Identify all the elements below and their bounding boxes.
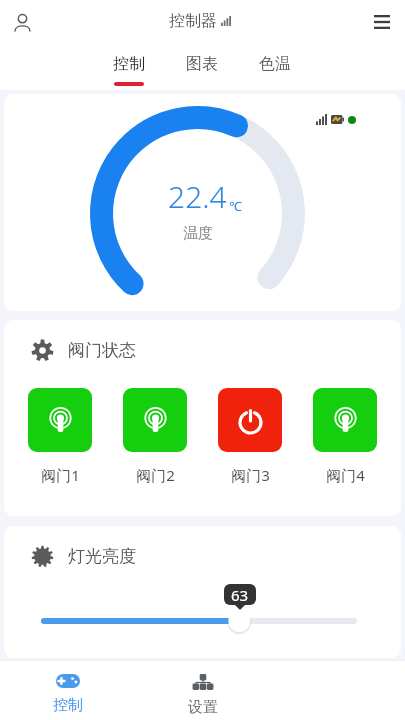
button[interactable]: 阀门3 <box>218 388 282 452</box>
staticText: 63 <box>231 585 249 605</box>
staticText: 色温 <box>259 54 291 74</box>
button[interactable]: Menu <box>365 5 399 39</box>
staticText: 控制 <box>113 54 145 74</box>
staticText: ℃ <box>229 197 242 215</box>
staticText: 22.4 <box>168 176 227 217</box>
button[interactable]: Account <box>5 5 39 39</box>
button[interactable]: 图表 <box>182 44 222 82</box>
button[interactable]: Brightness slider <box>4 601 401 641</box>
button[interactable]: 色温 <box>255 44 295 82</box>
staticText: 灯光亮度 <box>68 546 136 567</box>
staticText: 控制 <box>53 696 83 715</box>
button[interactable]: 控制 <box>0 661 135 720</box>
button[interactable]: 阀门4 <box>313 388 377 452</box>
staticText: 控制器 <box>169 11 217 31</box>
button[interactable]: 阀门1 <box>28 388 92 452</box>
staticText: 阀门状态 <box>68 340 136 361</box>
staticText: 设置 <box>188 698 218 717</box>
staticText: 温度 <box>183 224 213 243</box>
staticText: 阀门2 <box>136 465 175 485</box>
staticText: 阀门3 <box>231 465 270 485</box>
button[interactable]: 设置 <box>135 661 270 720</box>
staticText: 阀门1 <box>41 465 80 485</box>
staticText: 图表 <box>186 54 218 74</box>
button[interactable]: 阀门2 <box>123 388 187 452</box>
staticText: 阀门4 <box>326 465 365 485</box>
button[interactable]: 控制 <box>109 44 149 86</box>
